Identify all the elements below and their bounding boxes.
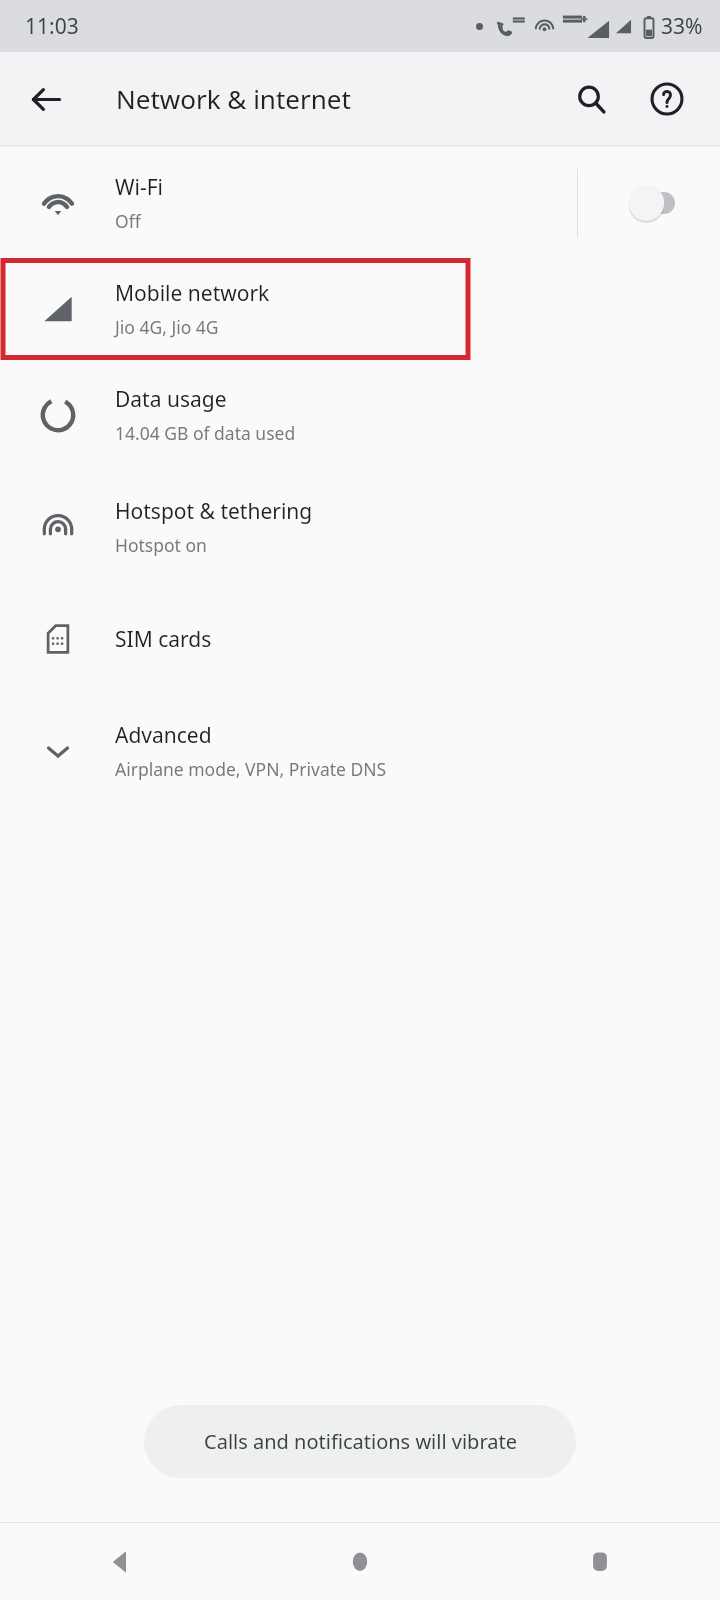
staticText: SIM cards (115, 625, 212, 654)
staticText: Hotspot on (115, 533, 207, 557)
staticText: Data usage (115, 385, 227, 414)
staticText: Off (115, 209, 141, 233)
button[interactable]: Hotspot & tethering (0, 471, 720, 583)
staticText: Jio 4G, Jio 4G (115, 315, 219, 339)
staticText: Wi-Fi (115, 173, 164, 202)
button[interactable]: Wi-Fi switch, off (578, 147, 720, 259)
button[interactable]: Data usage (0, 359, 720, 471)
staticText: 33% (661, 12, 703, 41)
button[interactable]: Calls and notifications will vibrate (144, 1405, 576, 1478)
staticText: 14.04 GB of data used (115, 421, 296, 445)
button[interactable]: Home (240, 1523, 480, 1600)
staticText: Hotspot & tethering (115, 497, 313, 526)
staticText: Network & internet (116, 81, 351, 116)
button[interactable]: Help (639, 71, 695, 127)
staticText: Advanced (115, 721, 212, 750)
staticText: Mobile network (115, 279, 270, 308)
button[interactable]: Back (0, 1523, 240, 1600)
button[interactable]: SIM cards (0, 583, 720, 695)
button[interactable]: Mobile network (0, 259, 720, 359)
button[interactable]: Search (563, 71, 619, 127)
button[interactable]: Recent apps (480, 1523, 720, 1600)
staticText: Airplane mode, VPN, Private DNS (115, 757, 387, 781)
button[interactable]: Advanced (0, 695, 720, 807)
button[interactable]: Wi-Fi (0, 147, 720, 259)
staticText: 11:03 (25, 12, 79, 41)
staticText: Calls and notifications will vibrate (204, 1428, 517, 1455)
button[interactable]: Back (18, 71, 74, 127)
